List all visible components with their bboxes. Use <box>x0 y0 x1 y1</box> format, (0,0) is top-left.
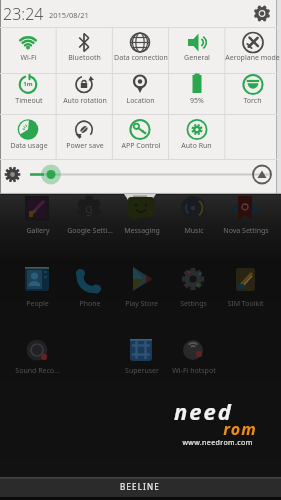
staticText: Torch <box>243 96 262 106</box>
button[interactable] <box>0 114 56 159</box>
staticText: 2015/08/21 <box>49 10 89 20</box>
button[interactable] <box>219 262 271 310</box>
staticText: www.needrom.com <box>182 438 253 448</box>
staticText: Data usage <box>10 141 48 151</box>
staticText: People <box>26 299 49 309</box>
button[interactable] <box>2 163 24 185</box>
staticText: Power save <box>66 141 104 151</box>
staticText: Location <box>126 96 155 106</box>
button[interactable] <box>112 27 168 73</box>
button[interactable] <box>63 262 115 310</box>
button[interactable] <box>56 73 112 114</box>
button[interactable] <box>115 335 167 379</box>
button[interactable] <box>11 196 63 238</box>
staticText: rom <box>223 418 257 440</box>
staticText: Timeout <box>15 96 43 106</box>
button[interactable] <box>56 27 112 73</box>
staticText: Auto Run <box>181 141 212 151</box>
button[interactable] <box>63 196 115 238</box>
staticText: BEELINE <box>120 481 160 492</box>
button[interactable] <box>11 262 63 310</box>
staticText: General <box>184 53 210 63</box>
staticText: Superuser <box>125 366 159 376</box>
staticText: Bluetooth <box>68 53 101 63</box>
button[interactable] <box>225 27 281 73</box>
staticText: APP Control <box>121 141 161 151</box>
button[interactable] <box>251 163 274 186</box>
button[interactable] <box>0 27 56 73</box>
button[interactable] <box>112 73 168 114</box>
staticText: 1m <box>23 80 33 88</box>
staticText: 95% <box>190 96 204 106</box>
button[interactable] <box>169 73 225 114</box>
staticText: Music <box>184 226 204 236</box>
staticText: Settings <box>180 299 207 309</box>
button[interactable] <box>248 2 274 26</box>
button[interactable] <box>169 114 225 159</box>
button[interactable] <box>11 335 63 379</box>
staticText: Messaging <box>124 226 160 236</box>
button[interactable] <box>124 192 156 204</box>
staticText: need <box>174 396 233 426</box>
staticText: Gallery <box>26 226 50 236</box>
button[interactable] <box>0 73 56 114</box>
staticText: g <box>85 200 93 216</box>
staticText: 23:24 <box>3 3 44 25</box>
button[interactable] <box>167 196 219 238</box>
staticText: Nova Settings <box>223 226 269 236</box>
staticText: Auto rotation <box>63 96 107 106</box>
staticText: Sound Reco... <box>15 366 60 376</box>
staticText: Aeroplane mode <box>225 53 280 63</box>
button[interactable] <box>219 196 271 238</box>
button[interactable] <box>115 262 167 310</box>
staticText: Phone <box>79 299 101 309</box>
button[interactable] <box>167 262 219 310</box>
staticText: Wi-Fi <box>20 53 37 63</box>
button[interactable] <box>167 335 219 379</box>
staticText: Wi-Fi hotspot <box>172 366 216 376</box>
button[interactable] <box>56 114 112 159</box>
staticText: Data connection <box>114 53 168 63</box>
staticText: Google Setti... <box>67 226 113 236</box>
button[interactable] <box>225 73 281 114</box>
button[interactable] <box>115 196 167 238</box>
staticText: Play Store <box>125 299 158 309</box>
button[interactable] <box>169 27 225 73</box>
staticText: SIM Toolkit <box>227 299 264 309</box>
button[interactable] <box>112 114 168 159</box>
